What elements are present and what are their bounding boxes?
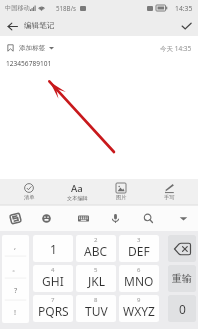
staticText: 清单 [24, 194, 35, 201]
staticText: ! [14, 307, 17, 317]
button[interactable]: 3 [119, 235, 159, 262]
button[interactable]: , [2, 235, 29, 257]
button[interactable]: Voice input [100, 205, 131, 231]
staticText: 3 [137, 236, 141, 244]
button[interactable]: 手写 [149, 179, 189, 205]
staticText: 8 [94, 296, 98, 304]
staticText: 14:35 [175, 4, 193, 13]
staticText: 1 [50, 241, 57, 257]
button[interactable]: Back [0, 16, 24, 36]
button[interactable]: 图片 [101, 179, 141, 205]
button[interactable]: Sogou input [0, 205, 31, 231]
button[interactable]: Search [133, 205, 164, 231]
button[interactable]: 。 [2, 257, 29, 279]
button[interactable]: 8 [76, 295, 116, 322]
staticText: WXYZ [123, 303, 155, 319]
staticText: 7 [51, 296, 55, 304]
staticText: 518B/s [56, 4, 76, 12]
staticText: 123456789101 [6, 59, 52, 68]
button[interactable]: 添加标签 [7, 40, 54, 56]
button[interactable]: ! [2, 301, 29, 323]
button[interactable]: 9 [119, 295, 159, 322]
staticText: 2 [94, 236, 98, 244]
staticText: PQRS [38, 303, 69, 319]
staticText: MNO [124, 273, 154, 289]
button[interactable]: 清单 [9, 179, 49, 205]
staticText: 中国移动 [5, 4, 30, 12]
button[interactable]: ? [2, 279, 29, 301]
button[interactable]: 0 [168, 295, 196, 322]
button[interactable]: Aa [57, 179, 97, 205]
staticText: 。 [12, 264, 20, 273]
staticText: GHI [42, 273, 64, 289]
staticText: 手写 [164, 194, 175, 201]
button[interactable]: Keyboard [68, 205, 99, 231]
staticText: ABC [84, 243, 108, 259]
staticText: Aa [71, 182, 83, 195]
button[interactable]: 2 [76, 235, 116, 262]
staticText: 图片 [116, 194, 127, 201]
staticText: 文本编辑 [67, 195, 88, 202]
button[interactable]: Save [174, 16, 198, 36]
button[interactable]: 1 [33, 235, 73, 262]
staticText: 重输 [172, 273, 192, 285]
staticText: 5 [94, 266, 98, 274]
staticText: 0 [179, 301, 186, 317]
staticText: JKL [88, 273, 105, 289]
staticText: , [14, 241, 17, 251]
staticText: 今天 14:35 [160, 44, 192, 53]
staticText: TUV [85, 303, 108, 319]
staticText: DEF [128, 243, 150, 259]
button[interactable]: 4 [33, 265, 73, 292]
staticText: 9 [137, 296, 141, 304]
button[interactable]: 7 [33, 295, 73, 322]
staticText: 添加标签 [19, 44, 46, 52]
button[interactable]: 5 [76, 265, 116, 292]
staticText: 6 [137, 266, 141, 274]
button[interactable]: Collapse keyboard [168, 205, 198, 231]
staticText: 编辑笔记 [24, 21, 55, 31]
staticText: ? [14, 285, 18, 295]
button[interactable]: Backspace [168, 235, 196, 262]
button[interactable]: Emoji [31, 205, 62, 231]
button[interactable]: 重输 [168, 265, 196, 292]
staticText: 4 [51, 266, 55, 274]
button[interactable]: 6 [119, 265, 159, 292]
